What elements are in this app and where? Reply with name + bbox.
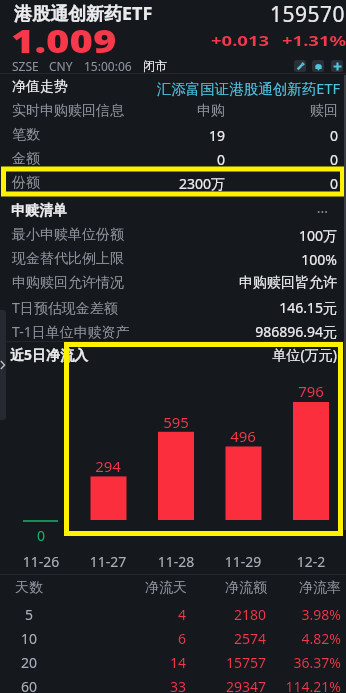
staticText: 294 — [78, 456, 138, 476]
button[interactable]: Open side panel — [0, 310, 6, 420]
staticText: 796 — [281, 381, 341, 401]
staticText: 36.37% — [121, 653, 341, 672]
staticText: 15:00:06 — [84, 58, 132, 74]
staticText: 14 — [0, 653, 186, 672]
staticText: 33 — [0, 677, 186, 693]
staticText: CNY — [49, 58, 73, 74]
staticText: 4.82% — [121, 629, 341, 648]
button[interactable]: 份额 — [0, 172, 346, 196]
staticText: 0 — [118, 174, 338, 193]
staticText: 申购赎回皆允许 — [117, 274, 337, 292]
staticText: 净值走势 — [12, 78, 68, 96]
staticText: +0.013 — [211, 31, 269, 50]
button[interactable]: Edit — [294, 60, 306, 72]
staticText: 净流额 — [47, 579, 267, 597]
staticText: 2300万 — [5, 174, 225, 193]
staticText: 近5日净流入 — [10, 345, 89, 364]
staticText: 114.21% — [121, 677, 341, 693]
staticText: 赎回 — [118, 102, 338, 120]
staticText: 最小申赎单位份额 — [12, 226, 124, 244]
staticText: 3.98% — [121, 605, 341, 624]
button[interactable]: 5 — [0, 599, 346, 623]
staticText: 10 — [0, 629, 59, 648]
staticText: 笔数 — [12, 126, 40, 144]
staticText: 0 — [5, 150, 225, 169]
staticText: 汇添富国证港股通创新药ETF — [120, 78, 340, 98]
button[interactable]: 金额 — [0, 148, 346, 172]
staticText: 2180 — [46, 605, 266, 624]
staticText: 5 — [0, 605, 59, 624]
button[interactable]: 10 — [0, 623, 346, 647]
button[interactable]: 20 — [0, 647, 346, 671]
staticText: 1.009 — [11, 19, 117, 63]
staticText: 净流天 — [0, 579, 187, 597]
staticText: 11-27 — [73, 552, 143, 571]
button[interactable]: 最小申赎单位份额 — [0, 222, 346, 246]
button[interactable]: 净值走势 — [0, 76, 346, 100]
staticText: 4 — [0, 605, 186, 624]
button[interactable]: Add to watchlist — [331, 60, 343, 72]
button[interactable]: 现金替代比例上限 — [0, 246, 346, 270]
staticText: 份额 — [12, 174, 40, 192]
staticText: +1.31% — [282, 31, 346, 50]
staticText: 申购赎回允许情况 — [12, 274, 124, 292]
staticText: 12-2 — [276, 552, 346, 571]
staticText: 天数 — [0, 579, 59, 597]
staticText: 申赎清单 — [11, 202, 67, 220]
staticText: 0 — [21, 526, 61, 545]
staticText: 146.15元 — [117, 298, 337, 317]
staticText: 现金替代比例上限 — [12, 250, 124, 268]
staticText: 单位(万元) — [117, 345, 337, 364]
staticText: 11-26 — [6, 552, 76, 571]
staticText: 986896.94元 — [117, 322, 337, 341]
staticText: 0 — [118, 150, 338, 169]
staticText: 0 — [118, 126, 338, 145]
staticText: 60 — [0, 677, 59, 693]
staticText: 15757 — [46, 653, 266, 672]
staticText: 496 — [213, 426, 273, 446]
button[interactable]: T-1日单位申赎资产 — [0, 318, 346, 342]
staticText: T-1日单位申赎资产 — [12, 322, 130, 341]
staticText: 595 — [146, 412, 206, 432]
staticText: SZSE — [12, 58, 39, 74]
staticText: 申购 — [5, 102, 225, 120]
button[interactable]: 申购赎回允许情况 — [0, 270, 346, 294]
button[interactable]: 笔数 — [0, 124, 346, 148]
staticText: 29347 — [46, 677, 266, 693]
button[interactable]: 60 — [0, 671, 346, 693]
staticText: 11-28 — [141, 552, 211, 571]
staticText: 100万 — [117, 226, 337, 245]
staticText: 11-29 — [208, 552, 278, 571]
staticText: ... — [108, 198, 328, 217]
staticText: 2574 — [46, 629, 266, 648]
staticText: 实时申购赎回信息 — [12, 102, 124, 120]
button[interactable]: T日预估现金差额 — [0, 294, 346, 318]
button[interactable]: Price alert — [312, 60, 324, 72]
button[interactable]: 申赎清单 — [0, 198, 346, 222]
staticText: T日预估现金差额 — [12, 298, 118, 317]
staticText: 金额 — [12, 150, 40, 168]
staticText: 港股通创新药ETF — [14, 1, 153, 26]
staticText: 净流率 — [121, 579, 341, 597]
button[interactable]: 实时申购赎回信息 — [0, 100, 346, 124]
staticText: 6 — [0, 629, 186, 648]
staticText: 100% — [117, 250, 337, 269]
staticText: 闭市 — [143, 58, 167, 73]
staticText: 159570 — [125, 0, 345, 29]
staticText: 19 — [5, 126, 225, 145]
staticText: 20 — [0, 653, 59, 672]
